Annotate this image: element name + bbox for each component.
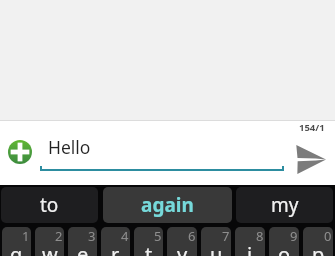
staticText: w — [42, 241, 58, 256]
staticText: 9 — [290, 227, 298, 245]
staticText: o — [278, 241, 291, 256]
button[interactable]: 9 — [269, 227, 299, 256]
staticText: e — [77, 241, 89, 256]
staticText: q — [10, 241, 23, 256]
staticText: 8 — [256, 227, 264, 245]
staticText: y — [177, 241, 188, 256]
button[interactable]: Add attachment — [8, 140, 32, 164]
button[interactable]: to — [1, 187, 98, 223]
staticText: 7 — [222, 227, 230, 245]
button[interactable]: 8 — [235, 227, 265, 256]
button[interactable]: 0 — [303, 227, 333, 256]
staticText: 0 — [324, 227, 332, 245]
button[interactable]: 1 — [2, 227, 31, 256]
button[interactable]: 4 — [101, 227, 130, 256]
button[interactable]: 3 — [68, 227, 97, 256]
button[interactable]: 7 — [201, 227, 231, 256]
staticText: p — [312, 241, 325, 256]
staticText: my — [271, 192, 299, 218]
staticText: 1 — [22, 227, 30, 245]
staticText: again — [141, 192, 194, 218]
staticText: Hello — [48, 135, 91, 159]
staticText: to — [40, 192, 59, 218]
staticText: r — [111, 241, 120, 256]
staticText: 154/1 — [299, 121, 325, 134]
staticText: 6 — [188, 227, 196, 245]
button[interactable]: 2 — [35, 227, 64, 256]
staticText: t — [145, 241, 153, 256]
staticText: i — [247, 241, 253, 256]
staticText: 3 — [88, 227, 96, 245]
button[interactable]: my — [236, 187, 333, 223]
button[interactable]: 5 — [134, 227, 163, 256]
staticText: 4 — [121, 227, 129, 245]
button[interactable]: again — [103, 187, 232, 223]
staticText: 5 — [154, 227, 162, 245]
staticText: u — [210, 241, 223, 256]
button[interactable]: 6 — [167, 227, 197, 256]
staticText: 2 — [55, 227, 63, 245]
button[interactable]: Send — [296, 145, 326, 174]
